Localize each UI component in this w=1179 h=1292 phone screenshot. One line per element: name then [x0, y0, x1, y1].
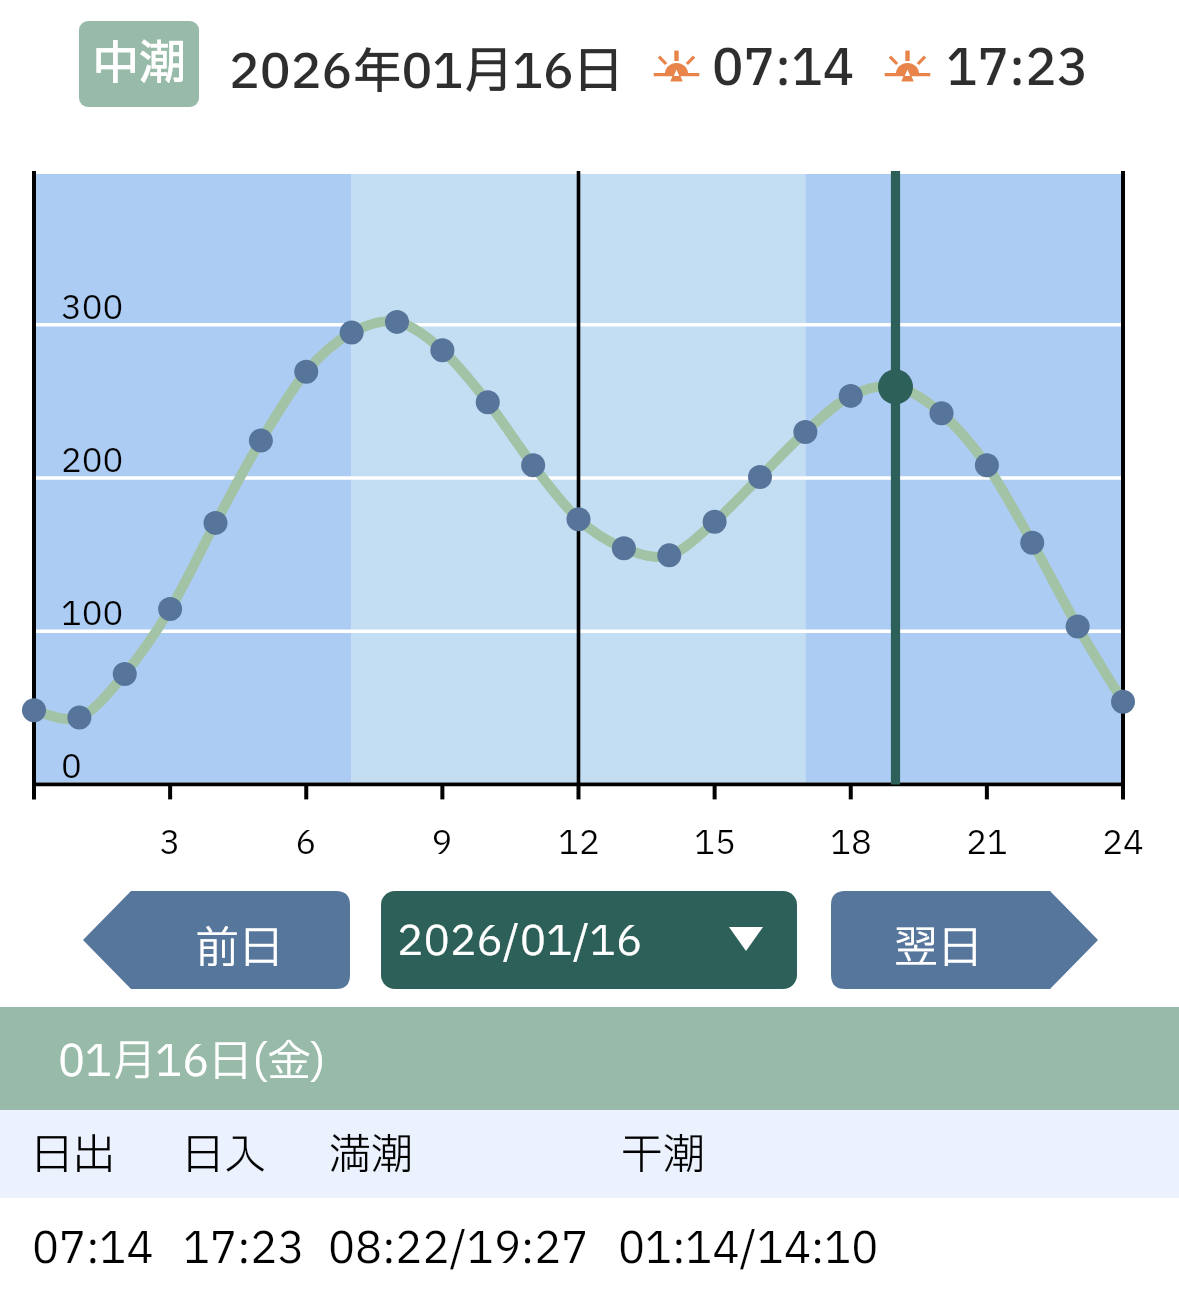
- staticText: 3: [70, 819, 270, 868]
- staticText: 翌日: [894, 916, 982, 982]
- other: Sunrise: [884, 44, 931, 84]
- staticText: 2026年01月16日: [229, 36, 623, 109]
- staticText: 08:22/19:27: [328, 1217, 589, 1281]
- staticText: 24: [1023, 819, 1179, 868]
- staticText: 300: [61, 284, 124, 333]
- staticText: 前日: [195, 916, 283, 982]
- button[interactable]: 中潮: [79, 21, 199, 107]
- staticText: 0: [61, 743, 82, 792]
- button[interactable]: 翌日: [831, 891, 1100, 989]
- staticText: 01月16日(金): [58, 1030, 326, 1094]
- staticText: 17:23: [946, 32, 1089, 107]
- staticText: 17:23: [183, 1217, 305, 1281]
- button[interactable]: 2026/01/16: [381, 891, 797, 989]
- staticText: 9: [342, 819, 542, 868]
- staticText: 6: [206, 819, 406, 868]
- staticText: 干潮: [621, 1124, 706, 1187]
- staticText: 15: [615, 819, 815, 868]
- button[interactable]: 前日: [81, 891, 350, 989]
- staticText: 07:14: [712, 32, 855, 107]
- staticText: 12: [479, 819, 679, 868]
- staticText: 21: [887, 819, 1087, 868]
- button[interactable]: 01月16日(金): [0, 1007, 1179, 1110]
- staticText: 満潮: [329, 1124, 414, 1187]
- button[interactable]: 07:14: [0, 1198, 1179, 1292]
- staticText: 18: [751, 819, 951, 868]
- staticText: 01:14/14:10: [618, 1217, 879, 1281]
- staticText: 200: [61, 437, 124, 486]
- staticText: 2026/01/16: [397, 910, 643, 973]
- staticText: 日出: [31, 1124, 116, 1187]
- staticText: 100: [61, 590, 124, 639]
- staticText: 中潮: [92, 29, 186, 99]
- staticText: 07:14: [32, 1217, 154, 1281]
- other: Sunrise: [653, 44, 700, 84]
- staticText: 日入: [182, 1124, 267, 1187]
